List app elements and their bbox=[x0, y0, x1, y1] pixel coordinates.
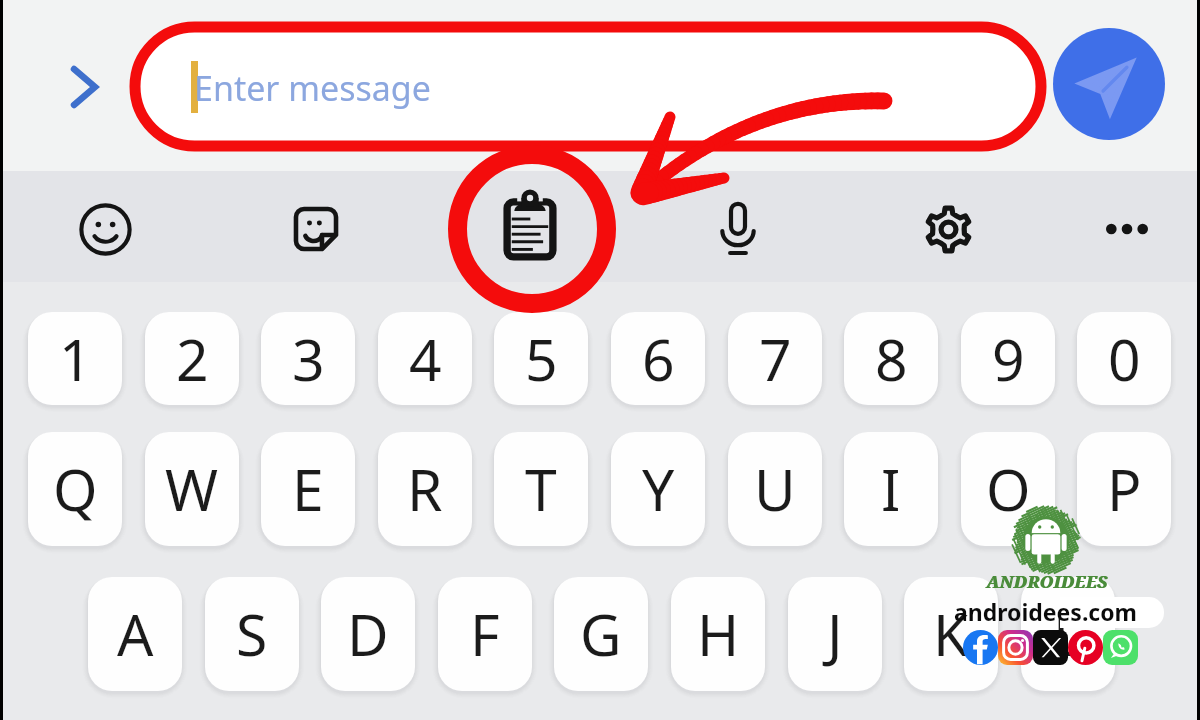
button[interactable]: E bbox=[261, 432, 355, 546]
button[interactable]: 9 bbox=[961, 312, 1055, 405]
button[interactable]: F bbox=[438, 577, 532, 691]
staticText: 7 bbox=[759, 320, 792, 398]
button[interactable]: 1 bbox=[28, 312, 122, 405]
staticText: 5 bbox=[525, 320, 558, 398]
button[interactable]: K bbox=[904, 577, 998, 691]
button[interactable]: 7 bbox=[728, 312, 822, 405]
button[interactable]: Y bbox=[611, 432, 705, 546]
button[interactable]: P bbox=[1077, 432, 1171, 546]
button[interactable]: Expand toolbar bbox=[55, 56, 115, 116]
button[interactable]: A bbox=[88, 577, 182, 691]
button[interactable]: L bbox=[1021, 577, 1115, 691]
button[interactable]: I bbox=[844, 432, 938, 546]
button[interactable]: 3 bbox=[261, 312, 355, 405]
button[interactable]: Clipboard bbox=[482, 181, 578, 277]
button[interactable]: S bbox=[205, 577, 299, 691]
staticText: S bbox=[236, 595, 268, 673]
button[interactable]: Settings bbox=[900, 181, 996, 277]
button[interactable]: Emoji bbox=[57, 181, 153, 277]
button[interactable]: R bbox=[378, 432, 472, 546]
button[interactable]: H bbox=[671, 577, 765, 691]
button[interactable]: D bbox=[321, 577, 415, 691]
staticText: G bbox=[580, 595, 622, 673]
staticText: 8 bbox=[875, 320, 908, 398]
staticText: 1 bbox=[59, 320, 92, 398]
staticText: O bbox=[986, 450, 1031, 528]
staticText: K bbox=[933, 595, 969, 673]
button[interactable]: More options bbox=[1079, 181, 1175, 277]
button[interactable]: Voice input bbox=[690, 181, 786, 277]
button[interactable]: Q bbox=[28, 432, 122, 546]
button[interactable]: 0 bbox=[1077, 312, 1171, 405]
button[interactable]: 8 bbox=[844, 312, 938, 405]
button[interactable]: Enter message bbox=[130, 23, 1040, 148]
staticText: Enter message bbox=[194, 65, 431, 111]
button[interactable]: 2 bbox=[145, 312, 239, 405]
button[interactable]: G bbox=[554, 577, 648, 691]
button[interactable]: J bbox=[788, 577, 882, 691]
staticText: 0 bbox=[1108, 320, 1141, 398]
staticText: ANDROIDEES bbox=[986, 570, 1108, 593]
staticText: 9 bbox=[992, 320, 1025, 398]
staticText: F bbox=[470, 595, 500, 673]
button[interactable]: Send bbox=[1053, 28, 1165, 140]
staticText: L bbox=[1053, 595, 1083, 673]
staticText: 4 bbox=[409, 320, 442, 398]
staticText: 3 bbox=[292, 320, 325, 398]
staticText: I bbox=[881, 450, 901, 528]
button[interactable]: O bbox=[961, 432, 1055, 546]
staticText: R bbox=[407, 450, 443, 528]
staticText: ANDROIDEES bbox=[987, 570, 1109, 593]
staticText: 6 bbox=[642, 320, 675, 398]
button[interactable]: T bbox=[494, 432, 588, 546]
button[interactable]: 6 bbox=[611, 312, 705, 405]
staticText: U bbox=[754, 450, 796, 528]
button[interactable]: U bbox=[728, 432, 822, 546]
staticText: T bbox=[525, 450, 557, 528]
staticText: 2 bbox=[176, 320, 209, 398]
staticText: H bbox=[697, 595, 740, 673]
staticText: D bbox=[347, 595, 389, 673]
staticText: Q bbox=[53, 450, 98, 528]
button[interactable]: 5 bbox=[494, 312, 588, 405]
button[interactable]: W bbox=[145, 432, 239, 546]
button[interactable]: 4 bbox=[378, 312, 472, 405]
staticText: androidees.com bbox=[954, 596, 1138, 627]
staticText: Y bbox=[642, 450, 675, 528]
button[interactable]: Stickers bbox=[268, 181, 364, 277]
staticText: P bbox=[1107, 450, 1142, 528]
staticText: J bbox=[827, 595, 843, 673]
staticText: A bbox=[117, 595, 154, 673]
staticText: W bbox=[165, 450, 219, 528]
staticText: E bbox=[292, 450, 324, 528]
